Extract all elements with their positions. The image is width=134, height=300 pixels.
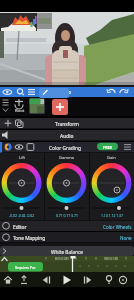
staticText: Gamma	[59, 155, 74, 160]
button[interactable]	[47, 162, 87, 204]
button[interactable]	[105, 87, 118, 97]
staticText: 0:00:03:25	[55, 257, 69, 261]
button[interactable]	[27, 87, 37, 97]
staticText: FREE	[103, 145, 113, 150]
button[interactable]	[96, 142, 119, 151]
staticText: Editor	[13, 224, 27, 231]
button[interactable]	[17, 273, 32, 288]
staticText: Root	[15, 108, 25, 114]
button[interactable]	[92, 162, 132, 204]
button[interactable]	[56, 273, 74, 288]
staticText: Color Grading	[49, 145, 82, 152]
staticText: None	[120, 235, 132, 241]
button[interactable]	[0, 129, 134, 140]
button[interactable]	[100, 273, 115, 288]
button[interactable]	[15, 87, 26, 97]
staticText: 1.14 1.12 1.37	[101, 213, 123, 218]
button[interactable]	[52, 98, 68, 115]
button[interactable]	[14, 117, 25, 128]
button[interactable]	[0, 246, 134, 256]
button[interactable]	[39, 88, 69, 98]
staticText: Gain	[107, 155, 116, 160]
button[interactable]	[0, 231, 134, 242]
staticText: Requires Pro	[15, 265, 36, 270]
staticText: -0.02 -0.02 -0.02	[9, 213, 35, 218]
staticText: Audio	[60, 133, 74, 140]
button[interactable]	[2, 87, 14, 97]
button[interactable]	[115, 273, 131, 288]
staticText: Lift	[19, 155, 25, 160]
button[interactable]	[79, 273, 94, 288]
button[interactable]	[0, 141, 134, 152]
button[interactable]	[8, 261, 44, 272]
staticText: Video	[57, 89, 71, 96]
staticText: White Balance	[51, 249, 84, 256]
button[interactable]	[2, 117, 14, 128]
staticText: Tone Mapping	[13, 235, 46, 242]
button[interactable]	[2, 162, 42, 204]
button[interactable]	[12, 97, 28, 115]
button[interactable]	[119, 87, 132, 97]
staticText: Transform	[55, 121, 79, 128]
staticText: Color Wheels	[103, 224, 132, 230]
button[interactable]	[38, 273, 53, 288]
button[interactable]	[0, 220, 134, 231]
staticText: 0:00:07:28	[104, 257, 118, 261]
button[interactable]	[29, 97, 45, 115]
button[interactable]	[0, 273, 16, 288]
staticText: 0.71 0.71 0.71	[56, 213, 78, 218]
